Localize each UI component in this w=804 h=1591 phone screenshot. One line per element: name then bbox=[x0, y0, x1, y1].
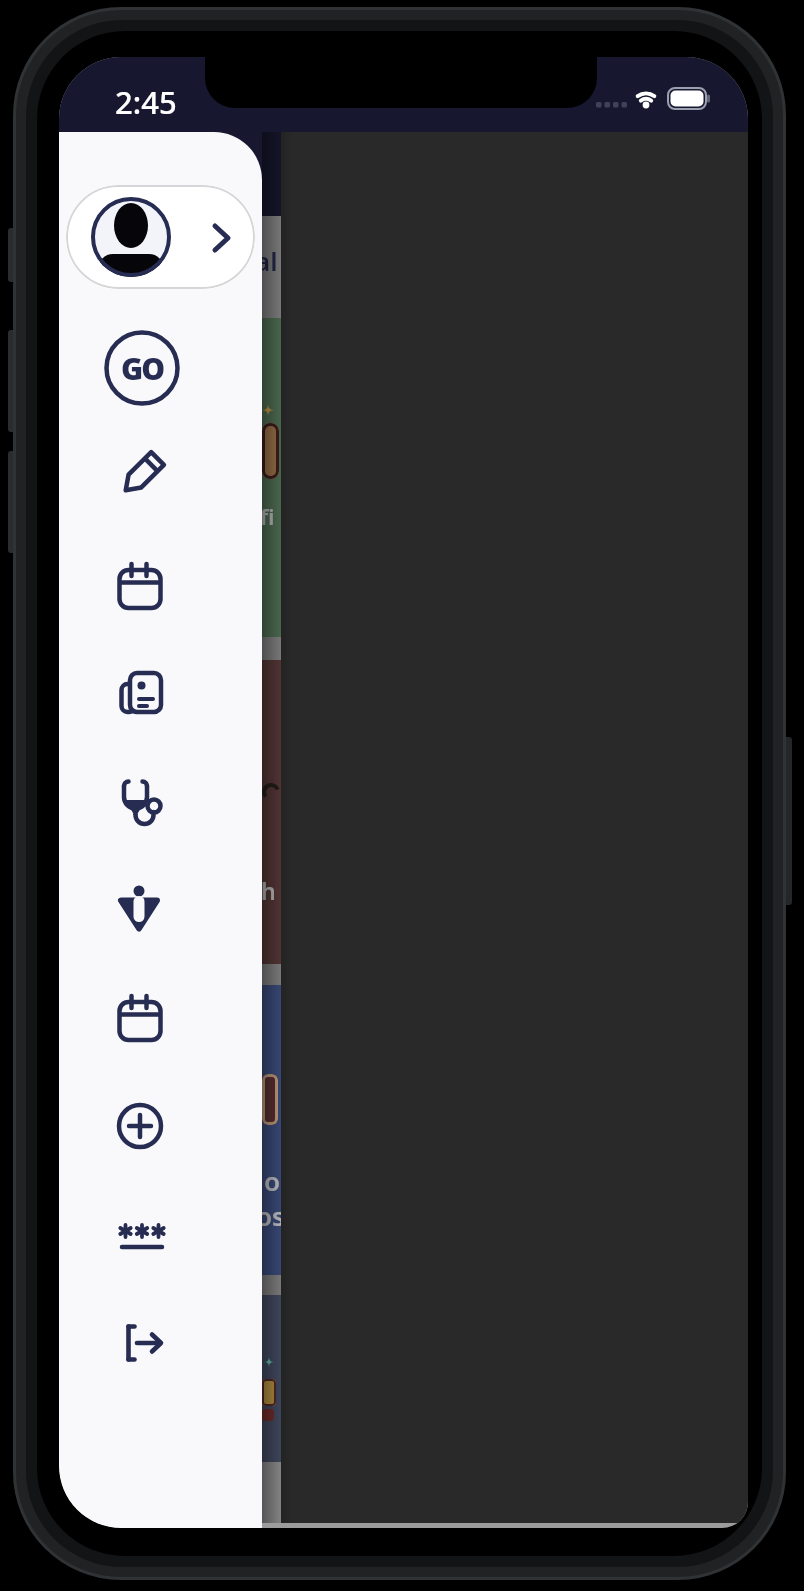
staticText: 2:45 bbox=[115, 81, 177, 123]
button[interactable] bbox=[111, 880, 167, 936]
button[interactable] bbox=[116, 1315, 172, 1371]
staticText: h bbox=[261, 875, 276, 906]
staticText: o bbox=[264, 1163, 281, 1198]
button[interactable] bbox=[112, 559, 168, 615]
button[interactable] bbox=[112, 1098, 168, 1154]
button[interactable] bbox=[66, 185, 255, 289]
staticText: os bbox=[256, 1198, 285, 1233]
button[interactable] bbox=[112, 991, 168, 1047]
button[interactable] bbox=[114, 1211, 170, 1267]
staticText: fi bbox=[260, 501, 275, 531]
button[interactable]: GO bbox=[104, 330, 180, 406]
button[interactable] bbox=[111, 773, 167, 829]
button[interactable] bbox=[113, 666, 169, 722]
staticText: GO bbox=[121, 348, 164, 389]
staticText: al bbox=[255, 243, 278, 278]
button[interactable] bbox=[114, 446, 170, 502]
